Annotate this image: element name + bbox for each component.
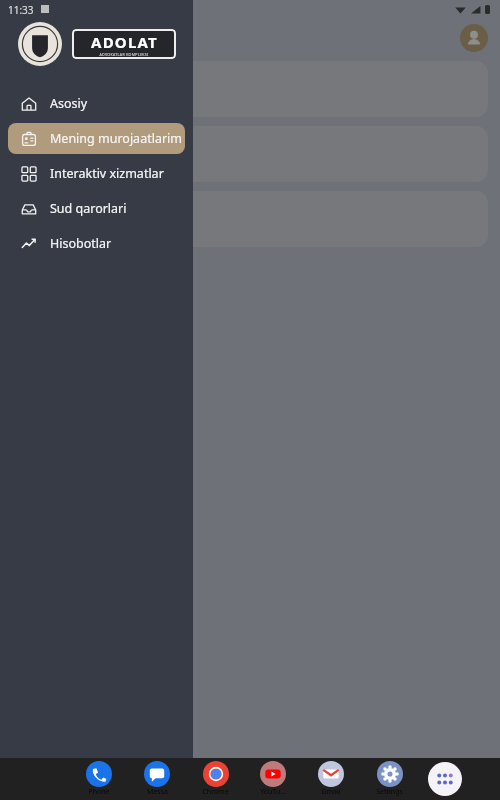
button[interactable]: Mening murojaatlarim bbox=[8, 123, 185, 154]
button[interactable]: Profile bbox=[460, 24, 488, 52]
staticText: Asosiy bbox=[50, 95, 88, 112]
staticText: Chrome bbox=[202, 787, 229, 797]
staticText: Phone bbox=[88, 787, 110, 797]
button[interactable]: Murojaatlar bbox=[12, 126, 488, 182]
button[interactable]: YouTu... bbox=[254, 758, 292, 800]
button[interactable]: Messa bbox=[138, 758, 176, 800]
button[interactable]: Sud qarorlari bbox=[8, 193, 185, 224]
button[interactable]: Chrome bbox=[196, 758, 234, 800]
staticText: Mening murojaatlarim bbox=[50, 130, 182, 147]
staticText: ADVOKATLAR KOMPLEKSI bbox=[99, 52, 149, 57]
button[interactable]: Hisobotlar bbox=[8, 228, 185, 259]
button[interactable]: Phone bbox=[80, 758, 118, 800]
staticText: Mening murojaatlarim bbox=[16, 28, 175, 48]
staticText: Murojaatlar bbox=[24, 146, 90, 162]
staticText: Messa bbox=[147, 787, 168, 797]
staticText: ADOLAT bbox=[91, 32, 158, 52]
button[interactable]: Asosiy bbox=[8, 88, 185, 119]
button[interactable]: Gmail bbox=[312, 758, 350, 800]
button[interactable]: Settings bbox=[370, 758, 408, 800]
staticText: Interaktiv xizmatlar bbox=[50, 165, 164, 182]
button[interactable]: Murojaatlar bbox=[12, 191, 488, 247]
button[interactable]: All apps bbox=[428, 762, 462, 796]
staticText: 11:33 bbox=[8, 3, 34, 17]
staticText: Gmail bbox=[321, 787, 341, 797]
button[interactable]: Interaktiv xizmatlar bbox=[8, 158, 185, 189]
staticText: Murojaatlar bbox=[24, 211, 90, 227]
button[interactable]: Murojaatlar bbox=[12, 61, 488, 117]
staticText: Hisobotlar bbox=[50, 235, 112, 252]
staticText: Sud qarorlari bbox=[50, 200, 127, 217]
staticText: Settings bbox=[376, 787, 403, 797]
staticText: YouTu... bbox=[260, 787, 286, 797]
